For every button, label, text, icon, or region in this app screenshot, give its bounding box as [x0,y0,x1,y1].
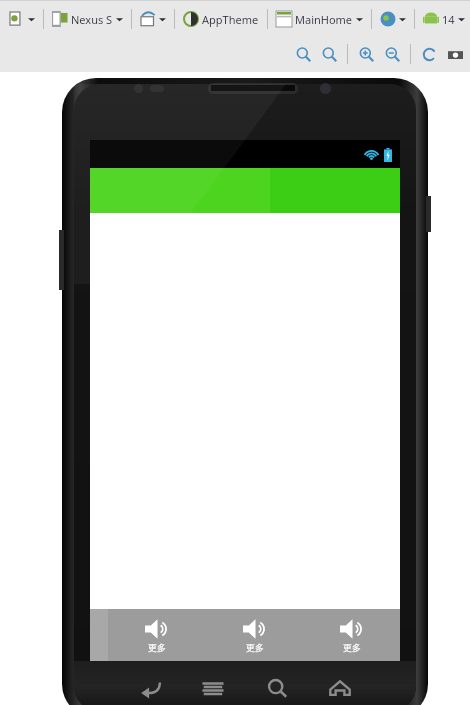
button[interactable]: Menu [191,667,235,705]
button[interactable]: Back [128,667,172,705]
button[interactable]: AppTheme [180,9,262,29]
button[interactable] [90,168,400,213]
staticText: AppTheme [202,12,259,27]
button[interactable]: 14 [420,9,468,29]
staticText: 更多 [246,642,264,653]
button[interactable]: Nexus S [49,9,126,29]
staticText: 更多 [148,642,166,653]
button[interactable]: 更多 [108,609,206,661]
button[interactable]: Zoom control [316,41,342,67]
staticText: MainHome [295,12,353,27]
button[interactable] [137,9,169,29]
button[interactable]: Zoom control [290,41,316,67]
staticText: 14 [442,12,455,27]
button[interactable] [6,9,38,29]
button[interactable]: Search [255,667,299,705]
button[interactable]: 更多 [303,609,400,661]
button[interactable]: 更多 [206,609,303,661]
button[interactable]: Zoom control [379,41,405,67]
staticText: Nexus S [71,12,113,27]
button[interactable]: Zoom control [442,41,468,67]
button[interactable]: MainHome [273,9,366,29]
button[interactable] [377,9,409,29]
button[interactable]: Home [318,667,362,705]
button[interactable]: Zoom control [416,41,442,67]
button[interactable]: Zoom control [353,41,379,67]
staticText: 更多 [343,642,361,653]
